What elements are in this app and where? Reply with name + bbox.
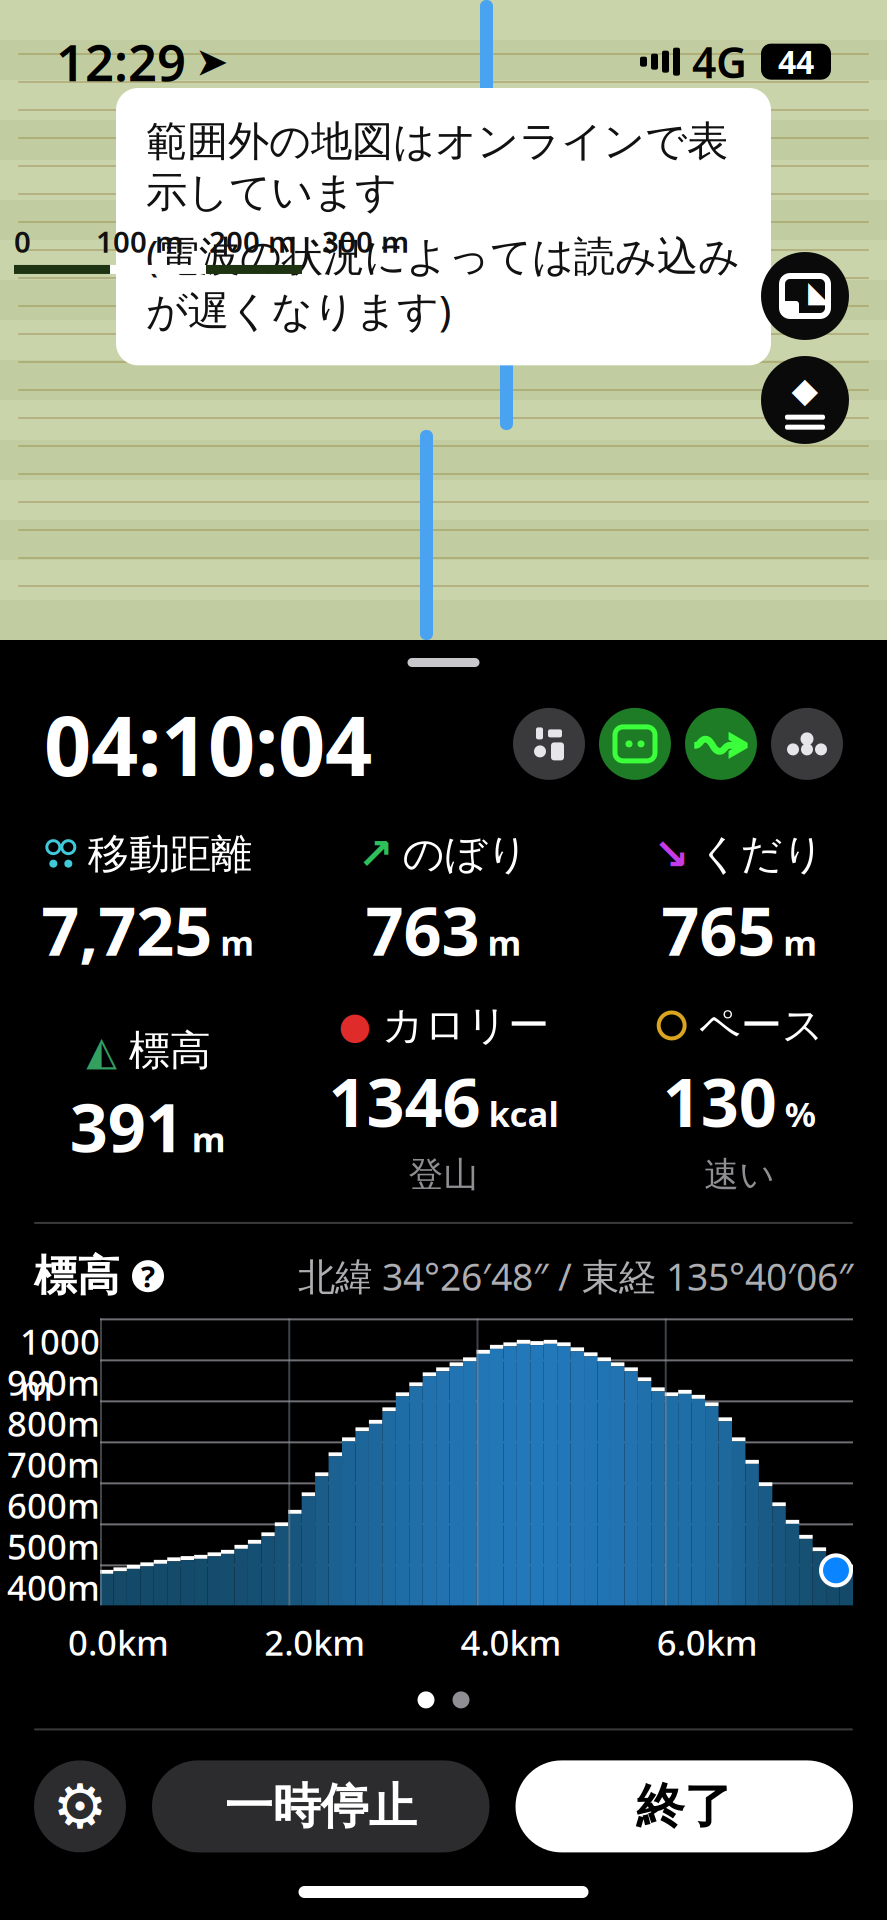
staticText: 763	[365, 885, 479, 974]
staticText: ➤	[195, 39, 229, 84]
button[interactable]: Help about elevation	[132, 1257, 164, 1296]
staticText: ペース	[699, 1000, 824, 1051]
staticText: ●	[338, 1004, 371, 1047]
staticText: 900m	[7, 1359, 100, 1405]
staticText: ◭	[86, 1028, 117, 1073]
staticText: ◆	[791, 370, 818, 410]
staticText: 391	[70, 1082, 184, 1171]
staticText: ⤳	[690, 720, 752, 768]
staticText: 7,725	[41, 885, 212, 974]
staticText: (電波の状況によっては読み込みが遅くなります)	[146, 227, 740, 337]
staticText: m	[487, 919, 521, 965]
button[interactable]: 終了	[515, 1760, 853, 1852]
staticText: 0.0km	[68, 1619, 169, 1665]
staticText: 130	[663, 1057, 777, 1145]
staticText: くだり	[698, 829, 824, 880]
staticText: 標高	[129, 1025, 211, 1076]
staticText: 移動距離	[88, 829, 252, 880]
staticText: カロリー	[382, 1000, 549, 1051]
staticText: のぼり	[402, 829, 528, 880]
staticText: 600m	[7, 1482, 100, 1528]
staticText: 一時停止	[225, 1777, 417, 1836]
staticText: 1000m	[20, 1318, 100, 1410]
staticText: 44	[778, 40, 814, 83]
staticText: 登山	[408, 1153, 478, 1196]
staticText: 終了	[636, 1777, 732, 1836]
staticText: 北緯 34°26′48″ / 東経 135°40′06″	[298, 1251, 853, 1301]
staticText: 2.0km	[264, 1619, 365, 1665]
staticText: m	[220, 919, 254, 965]
staticText: kcal	[488, 1090, 558, 1136]
staticText: 範囲外の地図はオンラインで表示しています	[146, 116, 728, 217]
staticText: 1346	[328, 1057, 480, 1145]
staticText: 400m	[7, 1564, 100, 1610]
staticText: 6.0km	[657, 1619, 758, 1665]
button[interactable]: Map layers	[761, 356, 849, 444]
staticText: ↘	[653, 830, 689, 878]
button[interactable]: Route	[685, 708, 757, 780]
staticText: 12:29	[56, 28, 186, 95]
staticText: 速い	[704, 1153, 774, 1196]
staticText: 500m	[7, 1523, 100, 1569]
button[interactable]: Fit map to track	[761, 252, 849, 340]
staticText: 300 m	[322, 222, 409, 261]
button[interactable]: Add note	[599, 708, 671, 780]
staticText: ◣	[808, 275, 831, 308]
staticText: 4G	[692, 33, 747, 90]
button[interactable]: Members	[771, 708, 843, 780]
button[interactable]: Settings	[34, 1760, 126, 1852]
staticText: ↗	[357, 830, 393, 878]
staticText: %	[785, 1090, 816, 1136]
staticText: 200 m	[209, 222, 296, 261]
staticText: ⚙	[52, 1772, 107, 1841]
staticText: 4.0km	[460, 1619, 561, 1665]
staticText: 765	[661, 885, 775, 974]
staticText: m	[783, 919, 817, 965]
button[interactable]: Waypoints	[513, 708, 585, 780]
staticText: 標高	[34, 1250, 120, 1302]
button[interactable]: 一時停止	[152, 1760, 489, 1852]
staticText: 04:10:04	[44, 689, 372, 799]
staticText: ?	[141, 1257, 155, 1296]
staticText: 700m	[7, 1441, 100, 1487]
staticText: 100 m	[96, 222, 183, 261]
staticText: 800m	[7, 1400, 100, 1446]
staticText: 0	[14, 222, 31, 261]
staticText: m	[192, 1116, 226, 1162]
